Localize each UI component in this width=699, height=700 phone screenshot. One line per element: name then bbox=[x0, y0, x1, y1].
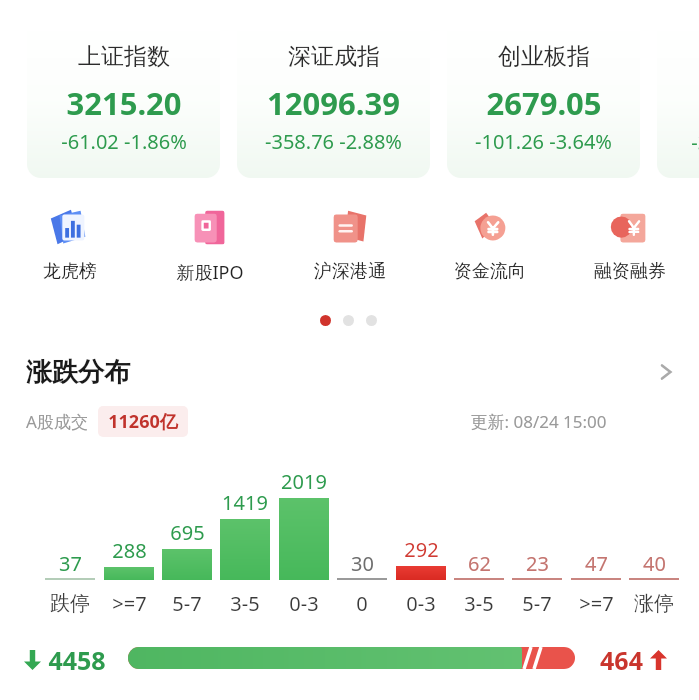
staticText: 3215.20 bbox=[66, 82, 182, 124]
other: 融资融券 bbox=[606, 205, 654, 253]
staticText: 新股IPO bbox=[176, 260, 244, 285]
staticText: 更新: 08/24 15:00 bbox=[470, 410, 607, 433]
staticText: 62 bbox=[468, 550, 491, 576]
staticText: 4458 bbox=[48, 643, 106, 677]
staticText: 0 bbox=[356, 590, 368, 617]
staticText: 47 bbox=[585, 550, 608, 576]
staticText: -101.26 -3.64% bbox=[475, 128, 612, 155]
button[interactable]: 科创50 bbox=[657, 18, 699, 178]
staticText: -61.02 -1.86% bbox=[61, 128, 187, 155]
staticText: 沪深港通 bbox=[314, 260, 386, 283]
button[interactable]: 深证成指 bbox=[237, 18, 430, 178]
staticText: 11260亿 bbox=[108, 409, 178, 434]
staticText: 695 bbox=[170, 519, 205, 545]
staticText: 融资融券 bbox=[594, 260, 666, 283]
staticText: 跌停 bbox=[50, 591, 90, 616]
staticText: 3-5 bbox=[464, 590, 494, 617]
staticText: 上证指数 bbox=[78, 42, 170, 71]
staticText: 深证成指 bbox=[288, 42, 380, 71]
staticText: 涨跌分布 bbox=[26, 356, 130, 389]
staticText: >=7 bbox=[579, 590, 614, 617]
staticText: 0-3 bbox=[289, 590, 319, 617]
button[interactable]: 龙虎榜 bbox=[10, 205, 130, 295]
other: 沪深港通 bbox=[326, 205, 374, 253]
staticText: -358.76 -2.88% bbox=[265, 128, 402, 155]
other: 资金流向 bbox=[466, 205, 514, 253]
button[interactable]: 沪深港通 bbox=[290, 205, 410, 295]
staticText: 40 bbox=[643, 550, 666, 576]
staticText: 资金流向 bbox=[454, 260, 526, 283]
staticText: >=7 bbox=[112, 590, 147, 617]
other: More bbox=[655, 361, 677, 383]
staticText: 292 bbox=[404, 536, 439, 562]
staticText: 2679.05 bbox=[486, 82, 602, 124]
button[interactable]: 涨跌分布 bbox=[0, 348, 699, 396]
staticText: A股成交 bbox=[26, 410, 88, 433]
staticText: 464 bbox=[600, 643, 643, 677]
staticText: 37 bbox=[59, 550, 82, 576]
other: 新股IPO bbox=[186, 205, 234, 253]
button[interactable]: 新股IPO bbox=[150, 205, 270, 295]
staticText: 龙虎榜 bbox=[43, 260, 97, 283]
other: 龙虎榜 bbox=[46, 205, 94, 253]
staticText: 30 bbox=[351, 550, 374, 576]
button[interactable]: 创业板指 bbox=[447, 18, 640, 178]
staticText: 创业板指 bbox=[498, 42, 590, 71]
staticText: 5-7 bbox=[522, 590, 552, 617]
button[interactable]: 融资融券 bbox=[570, 205, 690, 295]
staticText: 3-5 bbox=[230, 590, 260, 617]
staticText: 5-7 bbox=[172, 590, 202, 617]
staticText: 12096.39 bbox=[267, 82, 400, 124]
staticText: 1419 bbox=[222, 489, 268, 515]
staticText: 0-3 bbox=[406, 590, 436, 617]
staticText: 2019 bbox=[281, 468, 327, 494]
staticText: -30.11 -3.12% bbox=[691, 129, 699, 156]
staticText: 288 bbox=[112, 537, 147, 563]
staticText: 23 bbox=[526, 550, 549, 576]
staticText: 涨停 bbox=[634, 591, 674, 616]
button[interactable]: 上证指数 bbox=[27, 18, 220, 178]
button[interactable]: 资金流向 bbox=[430, 205, 550, 295]
